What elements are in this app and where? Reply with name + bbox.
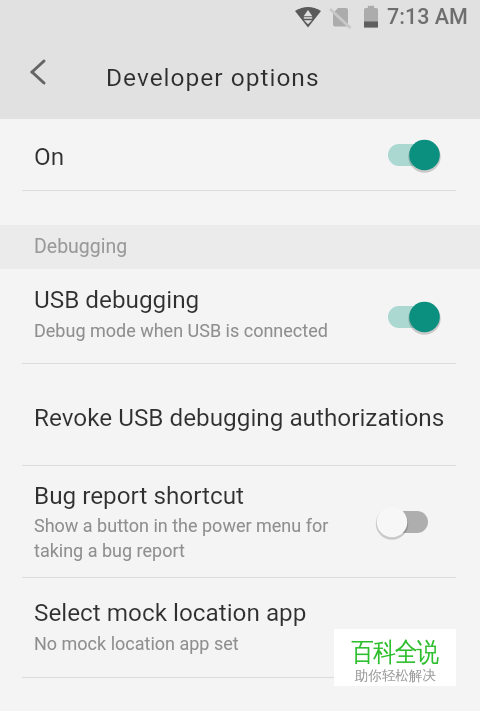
button[interactable] (0, 363, 480, 465)
staticText: Show a button in the power menu for (34, 515, 329, 536)
staticText: Debug mode when USB is connected (34, 320, 328, 341)
staticText: 助你轻松解决 (355, 667, 436, 684)
staticText: 7:13 AM (387, 4, 468, 29)
button[interactable] (0, 269, 480, 363)
staticText: No mock location app set (34, 633, 239, 654)
staticText: Debugging (34, 235, 128, 258)
button[interactable] (14, 50, 62, 94)
staticText: 百科全说 (351, 635, 439, 668)
staticText: USB debugging (34, 285, 200, 313)
button[interactable] (0, 577, 480, 677)
staticText: taking a bug report (34, 540, 185, 561)
button[interactable] (0, 465, 480, 577)
staticText: Select mock location app (34, 598, 307, 626)
staticText: On (34, 142, 65, 170)
staticText: Bug report shortcut (34, 481, 245, 509)
staticText: Developer options (106, 63, 320, 92)
staticText: Revoke USB debugging authorizations (34, 403, 445, 431)
button[interactable] (0, 119, 480, 190)
